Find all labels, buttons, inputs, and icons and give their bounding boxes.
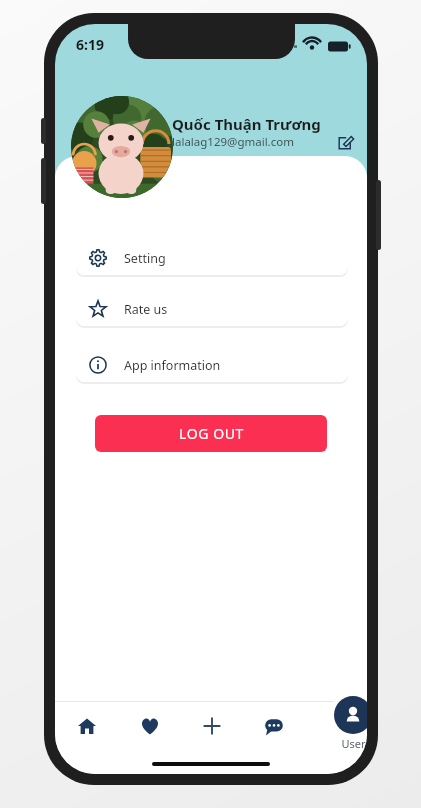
staticText: 6:19 <box>76 35 104 54</box>
staticText: LOG OUT <box>179 424 244 443</box>
button[interactable]: Setting <box>76 241 348 275</box>
button[interactable]: Messages <box>243 702 305 750</box>
staticText: Quốc Thuận Trương <box>172 114 321 134</box>
staticText: App information <box>124 357 221 374</box>
staticText: Rate us <box>124 301 168 318</box>
button[interactable]: User <box>333 696 367 751</box>
button[interactable]: Favorites <box>118 702 181 750</box>
staticText: Setting <box>124 250 166 267</box>
staticText: User <box>341 736 366 751</box>
button[interactable]: Rate us <box>76 292 348 326</box>
button[interactable]: LOG OUT <box>95 415 327 452</box>
button[interactable]: App information <box>76 348 348 382</box>
button[interactable]: Edit profile <box>333 128 359 154</box>
button[interactable]: Add <box>181 702 243 750</box>
button[interactable]: Profile photo <box>71 96 173 198</box>
staticText: lalalag129@gmail.com <box>172 134 294 150</box>
button[interactable]: Home <box>55 702 118 750</box>
